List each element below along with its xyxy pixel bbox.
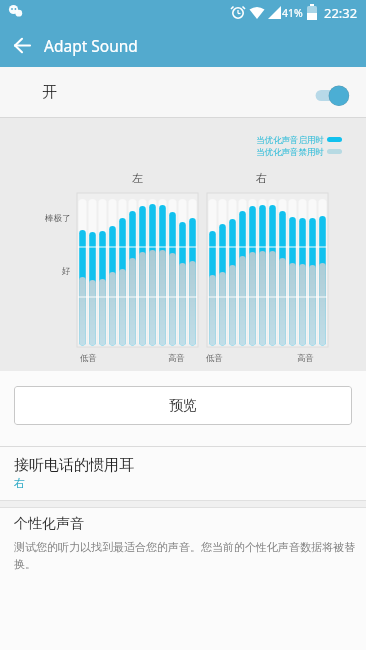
staticText: 个性化声音 bbox=[14, 515, 84, 533]
staticText: Adapt Sound bbox=[44, 35, 138, 56]
staticText: 左 bbox=[132, 171, 143, 185]
staticText: 高音 bbox=[297, 353, 314, 364]
button[interactable]: 个性化声音 bbox=[0, 508, 366, 598]
button[interactable]: 开 bbox=[0, 67, 366, 117]
staticText: 当优化声音启用时 bbox=[256, 135, 324, 146]
staticText: 当优化声音禁用时 bbox=[256, 147, 324, 158]
staticText: 右 bbox=[14, 476, 25, 490]
staticText: 高音 bbox=[168, 353, 185, 364]
staticText: 低音 bbox=[206, 353, 223, 364]
staticText: 41% bbox=[282, 6, 303, 20]
staticText: 右 bbox=[256, 171, 267, 185]
staticText: 22:32 bbox=[324, 4, 358, 22]
button[interactable]: 接听电话的惯用耳 bbox=[0, 447, 366, 500]
staticText: 开 bbox=[42, 83, 57, 102]
staticText: 低音 bbox=[80, 353, 97, 364]
staticText: 好 bbox=[62, 266, 71, 277]
button[interactable] bbox=[6, 31, 38, 59]
staticText: 接听电话的惯用耳 bbox=[14, 456, 134, 475]
staticText: 测试您的听力以找到最适合您的声音。您当前的个性化声音数据将被替 换。 bbox=[14, 540, 366, 572]
staticText: 预览 bbox=[169, 397, 197, 415]
staticText: 棒极了 bbox=[45, 213, 71, 224]
button[interactable]: 预览 bbox=[14, 386, 352, 425]
